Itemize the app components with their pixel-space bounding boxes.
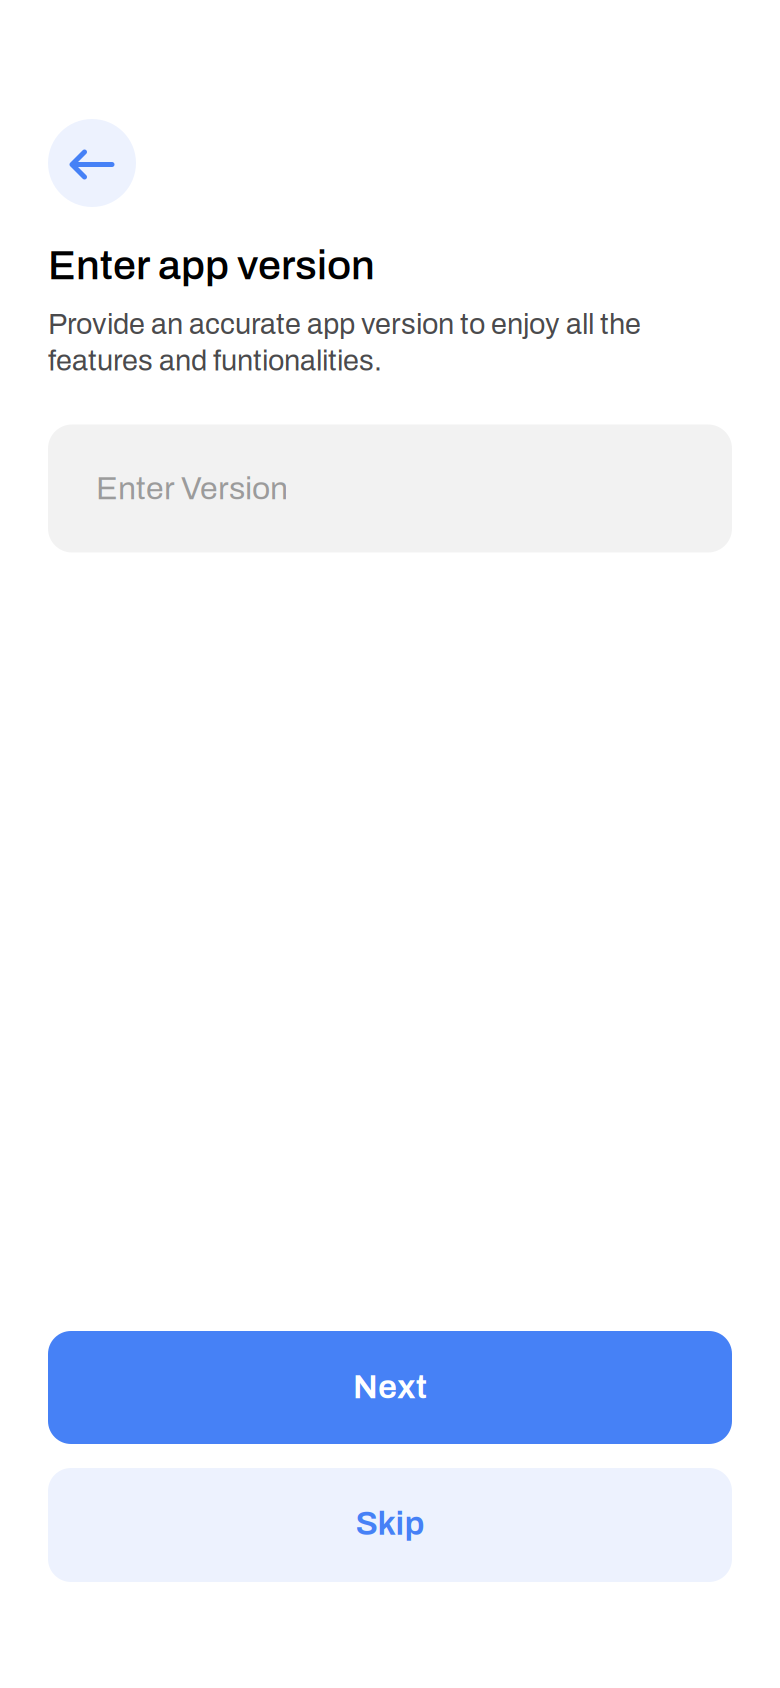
staticText: Next: [353, 1369, 427, 1405]
button[interactable]: Next: [48, 1331, 732, 1444]
staticText: Provide an accurate app version to enjoy…: [48, 309, 641, 376]
button[interactable]: Back: [48, 119, 136, 207]
staticText: Enter app version: [48, 243, 375, 288]
button[interactable]: Skip: [48, 1468, 732, 1582]
staticText: Enter Version: [96, 471, 288, 506]
button[interactable]: Enter Version: [48, 424, 732, 552]
staticText: Skip: [355, 1505, 424, 1542]
